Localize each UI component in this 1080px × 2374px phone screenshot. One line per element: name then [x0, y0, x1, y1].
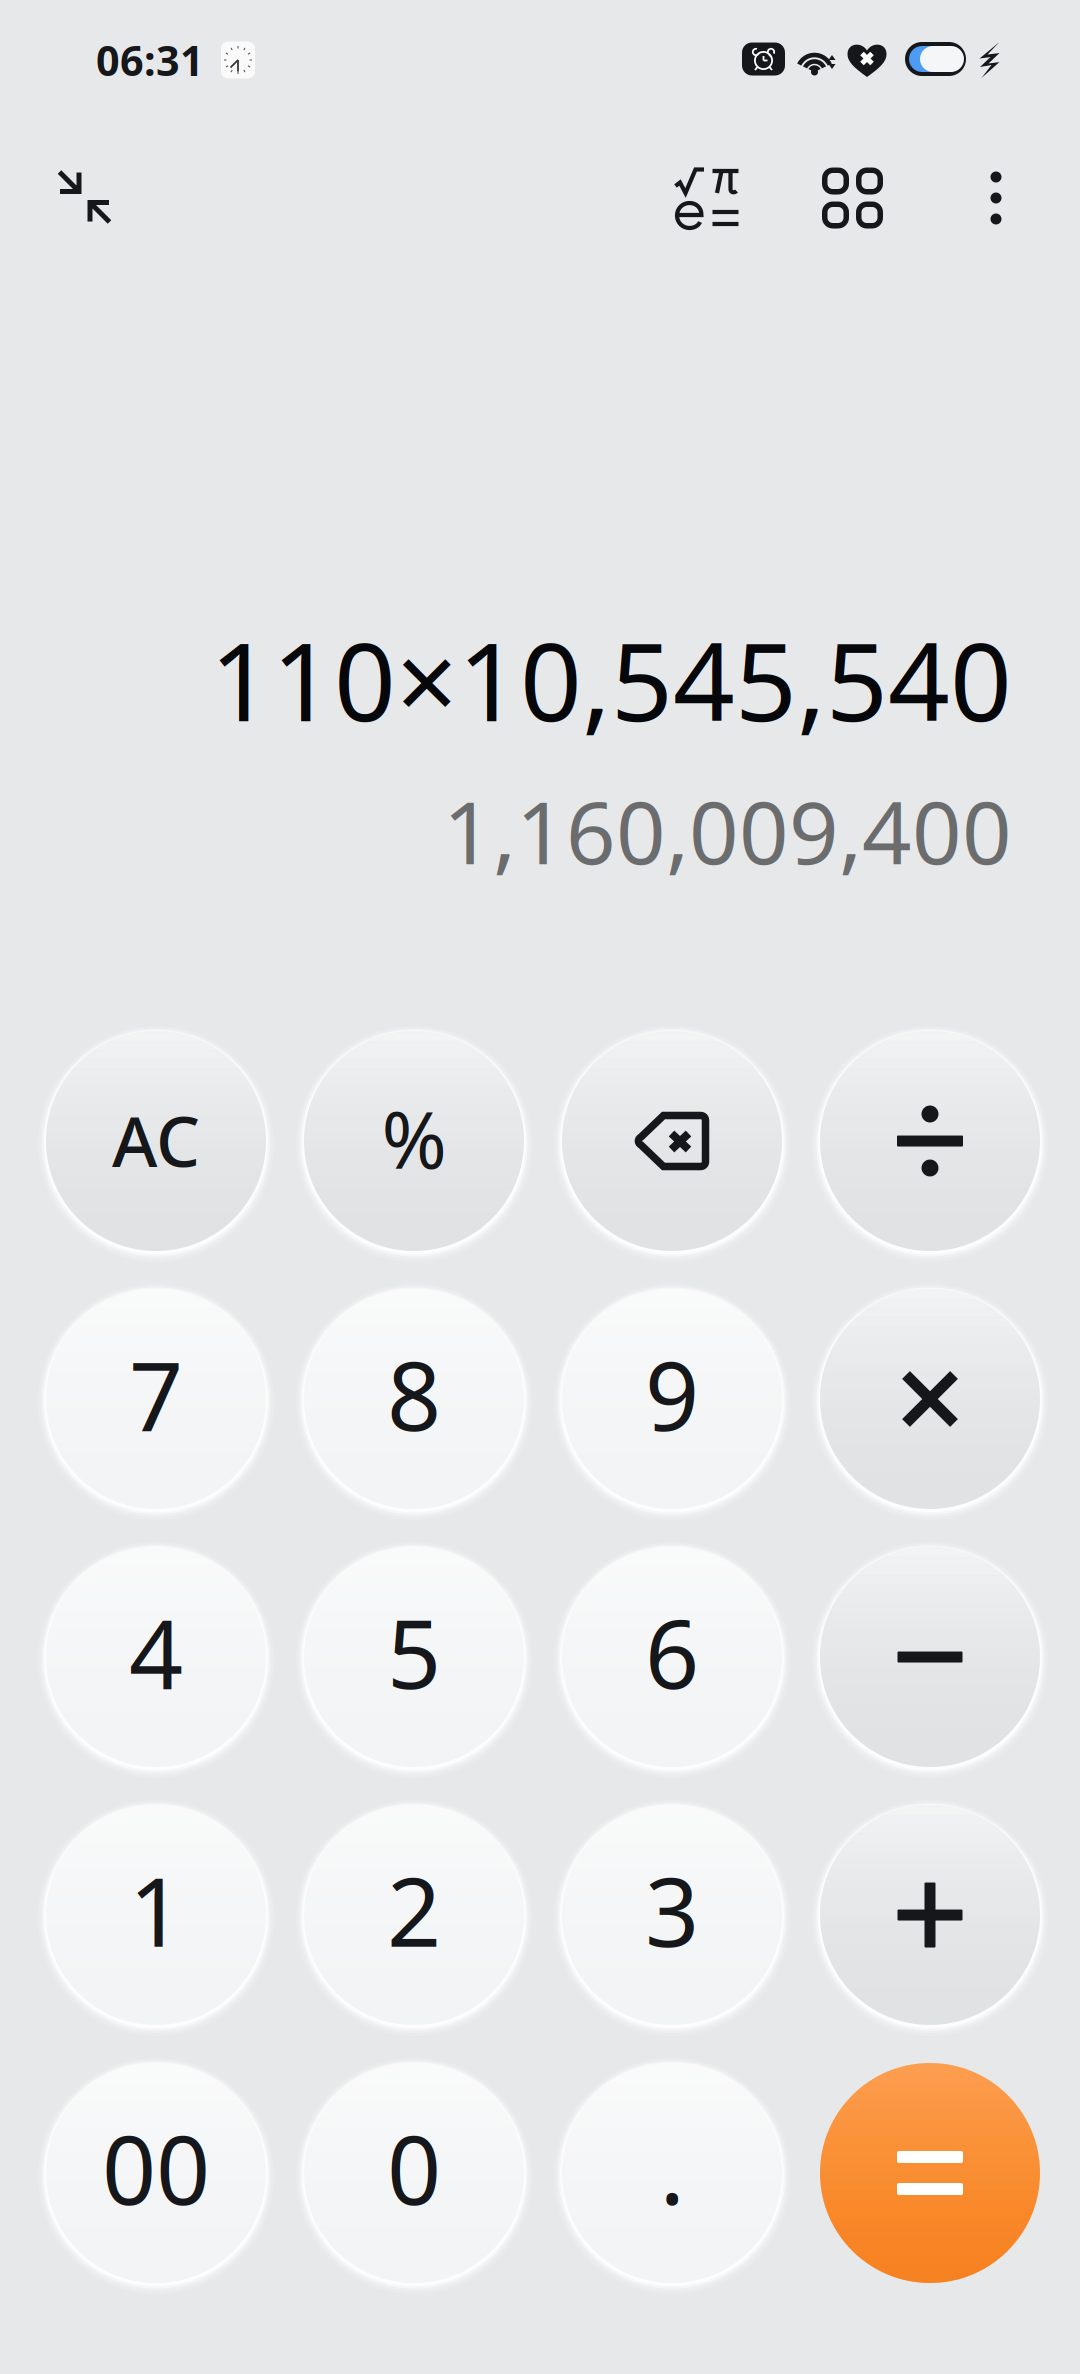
- button[interactable]: Scientific calculator: [652, 143, 762, 253]
- staticText: 06:31: [96, 33, 204, 87]
- staticText: 1: [129, 1847, 183, 1973]
- staticText: 1,160,009,400: [443, 773, 1012, 888]
- button[interactable]: [556, 1025, 788, 1257]
- staticText: 7: [129, 1331, 183, 1457]
- button[interactable]: [814, 1541, 1046, 1773]
- button[interactable]: Unit converter: [797, 143, 907, 253]
- button[interactable]: 8: [298, 1283, 530, 1515]
- button[interactable]: [814, 1799, 1046, 2031]
- button[interactable]: 2: [298, 1799, 530, 2031]
- button[interactable]: 4: [40, 1541, 272, 1773]
- button[interactable]: 1: [40, 1799, 272, 2031]
- button[interactable]: More options: [951, 143, 1041, 253]
- staticText: 2: [387, 1847, 441, 1973]
- staticText: 6: [645, 1589, 699, 1715]
- button[interactable]: %: [298, 1025, 530, 1257]
- staticText: 00: [102, 2105, 210, 2231]
- button[interactable]: 5: [298, 1541, 530, 1773]
- button[interactable]: AC: [40, 1025, 272, 1257]
- staticText: 110×10,545,540: [210, 608, 1012, 751]
- button[interactable]: 00: [40, 2057, 272, 2289]
- staticText: 9: [645, 1331, 699, 1457]
- staticText: AC: [112, 1094, 200, 1186]
- staticText: 5: [387, 1589, 441, 1715]
- button[interactable]: [814, 1025, 1046, 1257]
- button[interactable]: .: [556, 2057, 788, 2289]
- button[interactable]: 9: [556, 1283, 788, 1515]
- button[interactable]: [814, 2057, 1046, 2289]
- button[interactable]: Collapse: [24, 137, 144, 257]
- staticText: 4: [129, 1589, 183, 1715]
- button[interactable]: [814, 1283, 1046, 1515]
- button[interactable]: 7: [40, 1283, 272, 1515]
- staticText: 3: [645, 1847, 699, 1973]
- button[interactable]: 6: [556, 1541, 788, 1773]
- button[interactable]: 0: [298, 2057, 530, 2289]
- button[interactable]: 3: [556, 1799, 788, 2031]
- staticText: .: [659, 2105, 684, 2231]
- staticText: %: [381, 1086, 446, 1190]
- staticText: 0: [387, 2105, 441, 2231]
- staticText: 8: [387, 1331, 441, 1457]
